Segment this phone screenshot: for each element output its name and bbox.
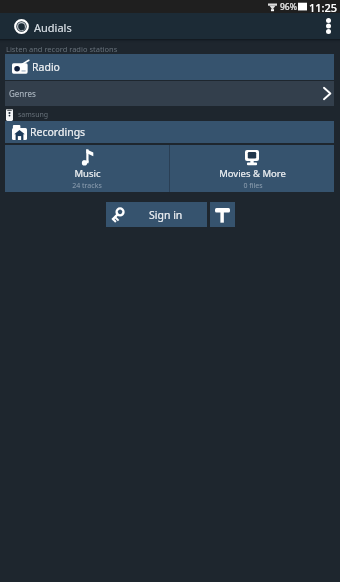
button[interactable]: Sign in [106, 202, 207, 227]
staticText: Sign in [149, 208, 183, 222]
button[interactable]: Radio [5, 54, 334, 80]
button[interactable]: Recordings [5, 121, 334, 143]
button[interactable]: Movies & More [170, 145, 334, 192]
staticText: 96% [280, 1, 297, 13]
staticText: Recordings [30, 125, 86, 139]
button[interactable]: More options [316, 13, 340, 39]
staticText: Audials [34, 20, 72, 35]
staticText: Radio [32, 60, 60, 74]
staticText: samsung [18, 110, 49, 120]
staticText: Listen and record radio stations [6, 44, 118, 53]
staticText: 24 tracks [72, 181, 102, 191]
button[interactable]: Music [5, 145, 169, 192]
staticText: 11:25 [309, 0, 338, 13]
staticText: Music [74, 167, 101, 180]
button[interactable]: Genres [5, 81, 334, 106]
staticText: 0 files [243, 181, 263, 191]
button[interactable]: Themes [210, 202, 235, 227]
staticText: Movies & More [219, 167, 286, 180]
staticText: Genres [9, 88, 36, 99]
